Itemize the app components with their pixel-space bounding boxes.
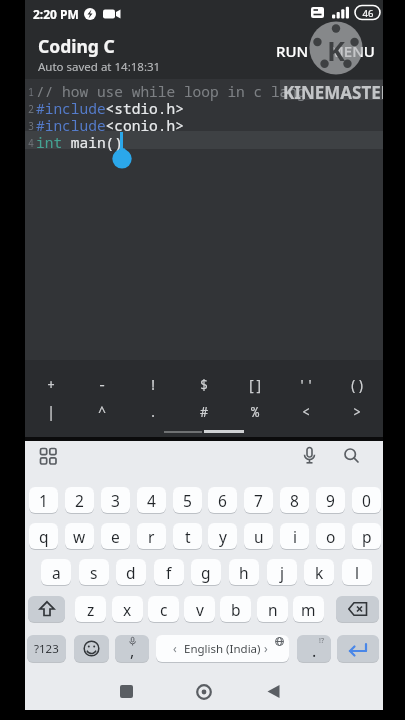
button[interactable]: 0 xyxy=(352,487,381,513)
staticText: z xyxy=(87,599,95,620)
button[interactable]: w xyxy=(65,523,94,549)
staticText: 1 xyxy=(28,85,34,99)
button[interactable] xyxy=(74,635,109,662)
staticText: #include<conio.h> xyxy=(36,115,184,135)
button[interactable]: n xyxy=(257,596,288,622)
button[interactable]: b xyxy=(220,596,251,622)
staticText: | xyxy=(47,403,56,421)
button[interactable]: y xyxy=(208,523,237,549)
staticText: KINEMASTER xyxy=(283,81,383,104)
button[interactable]: , xyxy=(115,635,149,662)
button[interactable]: % xyxy=(237,400,273,424)
button[interactable]: English (India) xyxy=(156,635,289,662)
button[interactable]: 5 xyxy=(173,487,202,513)
staticText: h xyxy=(239,562,249,583)
button[interactable]: t xyxy=(173,523,202,549)
button[interactable]: p xyxy=(352,523,381,549)
staticText: 5 xyxy=(183,490,192,511)
button[interactable]: 2 xyxy=(65,487,94,513)
button[interactable]: o xyxy=(316,523,345,549)
staticText: $ xyxy=(200,376,209,394)
button[interactable] xyxy=(336,596,379,622)
button[interactable]: RUN xyxy=(271,38,313,64)
staticText: v xyxy=(196,599,204,620)
button[interactable]: MENU xyxy=(324,38,380,64)
button[interactable]: + xyxy=(33,373,69,397)
button[interactable]: 1 xyxy=(29,487,58,513)
staticText: + xyxy=(47,376,56,394)
button[interactable]: $ xyxy=(186,373,222,397)
button[interactable] xyxy=(28,596,65,622)
button[interactable]: 6 xyxy=(208,487,237,513)
button[interactable] xyxy=(195,683,213,701)
button[interactable]: k xyxy=(304,559,334,585)
button[interactable]: ^ xyxy=(84,400,120,424)
button[interactable]: [] xyxy=(237,373,273,397)
button[interactable]: g xyxy=(191,559,221,585)
button[interactable] xyxy=(33,444,63,472)
staticText: 0 xyxy=(362,490,371,511)
staticText: - xyxy=(98,376,107,394)
button[interactable]: l xyxy=(342,559,372,585)
staticText: g xyxy=(201,562,211,583)
button[interactable] xyxy=(297,444,323,472)
staticText: . xyxy=(312,640,317,662)
button[interactable] xyxy=(118,683,135,700)
button[interactable]: h xyxy=(229,559,259,585)
staticText: y xyxy=(219,526,227,547)
button[interactable]: m xyxy=(293,596,324,622)
staticText: › xyxy=(264,640,268,656)
button[interactable] xyxy=(266,683,282,700)
staticText: s xyxy=(90,562,98,583)
staticText: u xyxy=(254,526,264,547)
button[interactable]: j xyxy=(267,559,297,585)
button[interactable]: q xyxy=(29,523,58,549)
button[interactable]: '' xyxy=(288,373,324,397)
button[interactable]: . xyxy=(135,400,171,424)
staticText: x xyxy=(123,599,132,620)
button[interactable]: i xyxy=(280,523,309,549)
staticText: n xyxy=(268,599,278,620)
button[interactable]: 4 xyxy=(137,487,166,513)
staticText: 2 xyxy=(75,490,84,511)
button[interactable]: < xyxy=(288,400,324,424)
button[interactable]: ! xyxy=(135,373,171,397)
button[interactable]: 9 xyxy=(316,487,345,513)
button[interactable]: d xyxy=(116,559,146,585)
button[interactable]: # xyxy=(186,400,222,424)
button[interactable]: ?123 xyxy=(27,635,66,662)
button[interactable]: 7 xyxy=(244,487,273,513)
button[interactable]: | xyxy=(33,400,69,424)
staticText: #include<stdio.h> xyxy=(36,98,184,118)
button[interactable]: s xyxy=(79,559,109,585)
button[interactable]: f xyxy=(154,559,184,585)
staticText: q xyxy=(39,526,49,547)
button[interactable]: z xyxy=(75,596,106,622)
button[interactable]: . xyxy=(297,635,331,662)
button[interactable]: a xyxy=(41,559,71,585)
button[interactable]: c xyxy=(148,596,179,622)
staticText: 4 xyxy=(28,136,34,150)
staticText: c xyxy=(160,599,168,620)
staticText: [] xyxy=(247,376,264,394)
button[interactable]: 3 xyxy=(101,487,130,513)
button[interactable]: v xyxy=(184,596,215,622)
staticText: 46 xyxy=(359,7,377,20)
button[interactable]: 8 xyxy=(280,487,309,513)
button[interactable]: r xyxy=(137,523,166,549)
staticText: m xyxy=(301,599,316,620)
button[interactable]: () xyxy=(339,373,375,397)
staticText: ! xyxy=(149,376,158,394)
staticText: () xyxy=(349,376,366,394)
button[interactable]: x xyxy=(112,596,143,622)
staticText: 9 xyxy=(326,490,335,511)
button[interactable]: u xyxy=(244,523,273,549)
staticText: 2:20 PM xyxy=(33,6,79,22)
staticText: d xyxy=(126,562,136,583)
button[interactable]: > xyxy=(339,400,375,424)
button[interactable] xyxy=(339,444,365,472)
staticText: ?123 xyxy=(34,641,59,657)
button[interactable]: - xyxy=(84,373,120,397)
button[interactable] xyxy=(337,635,379,662)
button[interactable]: e xyxy=(101,523,130,549)
